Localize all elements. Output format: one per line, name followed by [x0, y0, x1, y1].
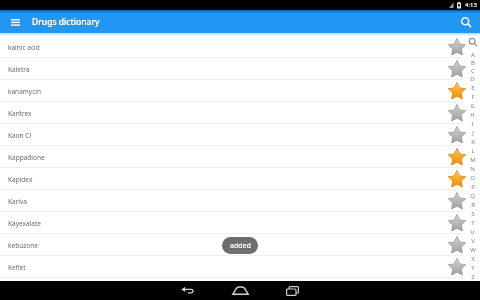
staticText: U [470, 228, 475, 236]
button[interactable]: kanamycin [0, 80, 480, 102]
button[interactable]: kainic acid [0, 36, 480, 58]
button[interactable] [447, 235, 467, 255]
staticText: 4:13 [465, 1, 477, 9]
staticText: X [471, 255, 475, 263]
staticText: Kantrex [8, 109, 32, 118]
button[interactable] [275, 281, 309, 300]
button[interactable]: G [465, 101, 480, 110]
staticText: J [472, 129, 474, 137]
button[interactable]: Y [465, 263, 480, 272]
button[interactable]: U [465, 227, 480, 236]
button[interactable]: D [465, 75, 480, 83]
staticText: R [471, 201, 475, 209]
button[interactable]: Kaon Cl [0, 124, 480, 146]
button[interactable]: F [465, 92, 480, 101]
button[interactable]: S [465, 209, 480, 218]
button[interactable] [447, 81, 467, 101]
staticText: G [470, 102, 475, 110]
button[interactable]: C [465, 67, 480, 75]
button[interactable]: P [465, 182, 480, 191]
staticText: O [470, 174, 475, 182]
button[interactable]: I [465, 119, 480, 128]
staticText: F [471, 93, 475, 101]
button[interactable]: Kayexalate [0, 212, 480, 234]
button[interactable]: O [465, 173, 480, 182]
staticText: K [471, 138, 475, 146]
staticText: H [470, 111, 475, 119]
staticText: kebuzone [8, 241, 38, 250]
staticText: Kapidex [8, 175, 33, 184]
staticText: Kappadione [8, 153, 45, 162]
button[interactable]: A [465, 51, 480, 59]
button[interactable] [447, 59, 467, 79]
button[interactable]: E [465, 83, 480, 92]
staticText: P [471, 183, 475, 191]
button[interactable]: Kantrex [0, 102, 480, 124]
button[interactable] [447, 257, 467, 277]
button[interactable] [447, 191, 467, 211]
button[interactable]: L [465, 146, 480, 155]
button[interactable]: V [465, 236, 480, 245]
button[interactable] [223, 281, 257, 300]
button[interactable]: T [465, 218, 480, 227]
staticText: A [471, 51, 475, 59]
button[interactable]: Q [465, 191, 480, 200]
staticText: B [471, 59, 475, 67]
staticText: I [471, 120, 474, 128]
staticText: Y [471, 264, 475, 272]
button[interactable]: Kappadione [0, 146, 480, 168]
button[interactable] [447, 147, 467, 167]
button[interactable]: B [465, 59, 480, 67]
staticText: kanamycin [8, 87, 41, 96]
button[interactable] [457, 13, 475, 31]
staticText: T [471, 219, 475, 227]
button[interactable]: Kariva [0, 190, 480, 212]
staticText: kainic acid [8, 43, 40, 52]
button[interactable]: H [465, 110, 480, 119]
button[interactable]: Z [465, 272, 480, 281]
staticText: V [471, 237, 475, 245]
button[interactable]: J [465, 128, 480, 137]
button[interactable] [171, 281, 205, 300]
staticText: Kariva [8, 197, 27, 206]
button[interactable]: X [465, 254, 480, 263]
staticText: Kaon Cl [8, 131, 32, 140]
button[interactable] [447, 169, 467, 189]
staticText: S [471, 210, 475, 218]
button[interactable] [6, 13, 24, 31]
button[interactable]: K [465, 137, 480, 146]
staticText: Q [470, 192, 475, 200]
staticText: Kaletra [8, 65, 30, 74]
button[interactable]: M [465, 155, 480, 164]
staticText: Keflet [8, 263, 26, 272]
button[interactable]: W [465, 245, 480, 254]
staticText: W [470, 246, 476, 254]
staticText: D [470, 75, 475, 83]
staticText: Drugs dictionary [32, 16, 100, 28]
button[interactable]: N [465, 164, 480, 173]
staticText: N [470, 165, 475, 173]
button[interactable]: R [465, 200, 480, 209]
staticText: Kayexalate [8, 219, 41, 228]
button[interactable]: Keflet [0, 256, 480, 278]
staticText: C [471, 67, 475, 75]
staticText: Z [471, 273, 475, 281]
staticText: added [230, 241, 251, 251]
button[interactable] [447, 125, 467, 145]
button[interactable] [447, 103, 467, 123]
staticText: E [471, 84, 475, 92]
button[interactable] [447, 213, 467, 233]
button[interactable]: Kapidex [0, 168, 480, 190]
staticText: M [470, 156, 476, 164]
staticText: L [471, 147, 475, 155]
button[interactable] [447, 37, 467, 57]
button[interactable]: kebuzone [0, 234, 480, 256]
button[interactable]: Kaletra [0, 58, 480, 80]
